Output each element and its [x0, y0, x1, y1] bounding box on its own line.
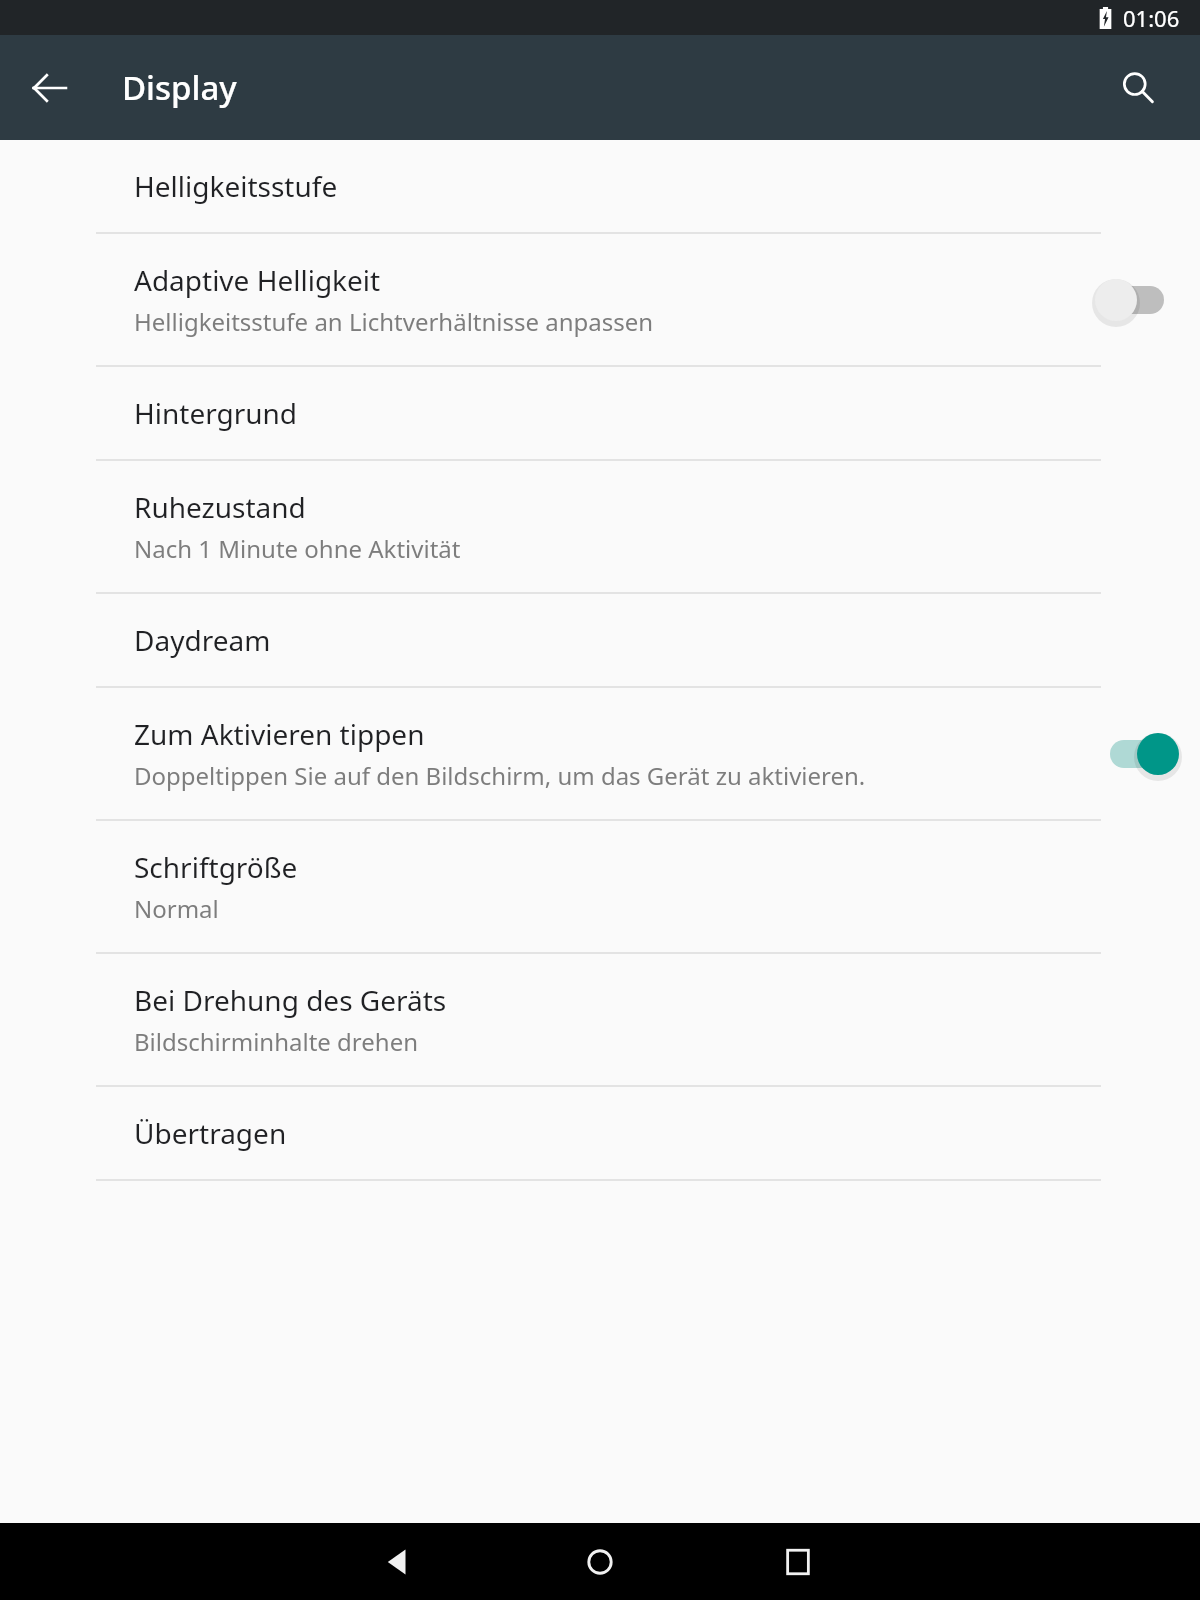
staticText: Zum Aktivieren tippen [134, 715, 425, 753]
button[interactable]: Search [1102, 52, 1174, 124]
button[interactable]: Switch off [1088, 271, 1174, 329]
staticText: Daydream [134, 621, 271, 659]
button[interactable]: Schriftgröße [0, 821, 1200, 952]
button[interactable]: Bei Drehung des Geräts [0, 954, 1200, 1085]
staticText: Bildschirminhalte drehen [134, 1025, 419, 1058]
staticText: Display [122, 65, 237, 110]
button[interactable]: Home [556, 1523, 644, 1600]
staticText: Bei Drehung des Geräts [134, 981, 447, 1019]
staticText: Doppeltippen Sie auf den Bildschirm, um … [134, 759, 866, 792]
staticText: Helligkeitsstufe [134, 167, 338, 205]
staticText: Hintergrund [134, 394, 298, 432]
button[interactable]: Adaptive Helligkeit [0, 234, 1200, 365]
staticText: Ruhezustand [134, 488, 306, 526]
staticText: Nach 1 Minute ohne Aktivität [134, 532, 461, 565]
staticText: Helligkeitsstufe an Lichtverhältnisse an… [134, 305, 654, 338]
button[interactable]: Daydream [0, 594, 1200, 686]
button[interactable]: Übertragen [0, 1087, 1200, 1179]
button[interactable]: Ruhezustand [0, 461, 1200, 592]
button[interactable]: Switch on [1088, 725, 1174, 783]
staticText: Schriftgröße [134, 848, 298, 886]
button[interactable]: Back [13, 52, 85, 124]
button[interactable]: Zum Aktivieren tippen [0, 688, 1200, 819]
button[interactable]: Helligkeitsstufe [0, 140, 1200, 232]
button[interactable]: Hintergrund [0, 367, 1200, 459]
staticText: Normal [134, 892, 219, 925]
staticText: Adaptive Helligkeit [134, 261, 381, 299]
staticText: 01:06 [1123, 3, 1180, 33]
staticText: Übertragen [134, 1114, 287, 1152]
button[interactable]: Recents [754, 1523, 842, 1600]
button[interactable]: Back [354, 1523, 442, 1600]
